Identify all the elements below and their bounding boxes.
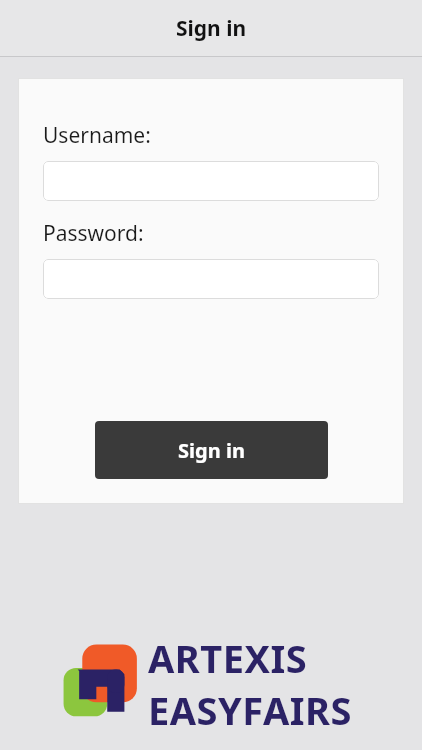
staticText: Username:: [43, 121, 151, 150]
staticText: Sign in: [176, 14, 247, 43]
button[interactable]: Text input field: [43, 259, 379, 299]
button[interactable]: Sign in: [95, 421, 328, 479]
staticText: Sign in: [178, 437, 245, 464]
staticText: Password:: [43, 219, 144, 248]
button[interactable]: Text input field: [43, 161, 379, 201]
staticText: EASYFAIRS: [148, 684, 352, 736]
staticText: ARTEXIS: [148, 632, 308, 684]
